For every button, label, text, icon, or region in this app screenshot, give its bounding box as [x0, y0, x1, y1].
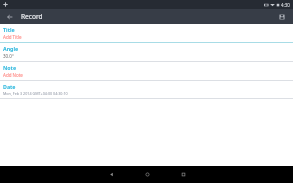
staticText: 30.0° [3, 53, 14, 59]
staticText: 4:30 [281, 2, 290, 8]
button[interactable]: Recent apps [165, 166, 201, 183]
staticText: Record [21, 12, 276, 21]
button[interactable]: Note [0, 62, 293, 81]
button[interactable]: Home [129, 166, 165, 183]
button[interactable]: Navigate up [4, 11, 16, 23]
staticText: Angle [3, 45, 19, 52]
staticText: Mon, Feb 3 2014 GMT+04:00 04:30:10 [3, 91, 68, 96]
button[interactable]: Title [0, 24, 293, 43]
staticText: Date [3, 83, 16, 90]
button[interactable]: Angle [0, 43, 293, 62]
button[interactable]: Date [0, 81, 293, 99]
staticText: Title [3, 26, 15, 33]
staticText: Note [3, 64, 17, 71]
button[interactable]: Back [93, 166, 129, 183]
staticText: Add Note [3, 72, 23, 78]
button[interactable]: Save [276, 11, 288, 23]
staticText: Add Title [3, 34, 22, 40]
